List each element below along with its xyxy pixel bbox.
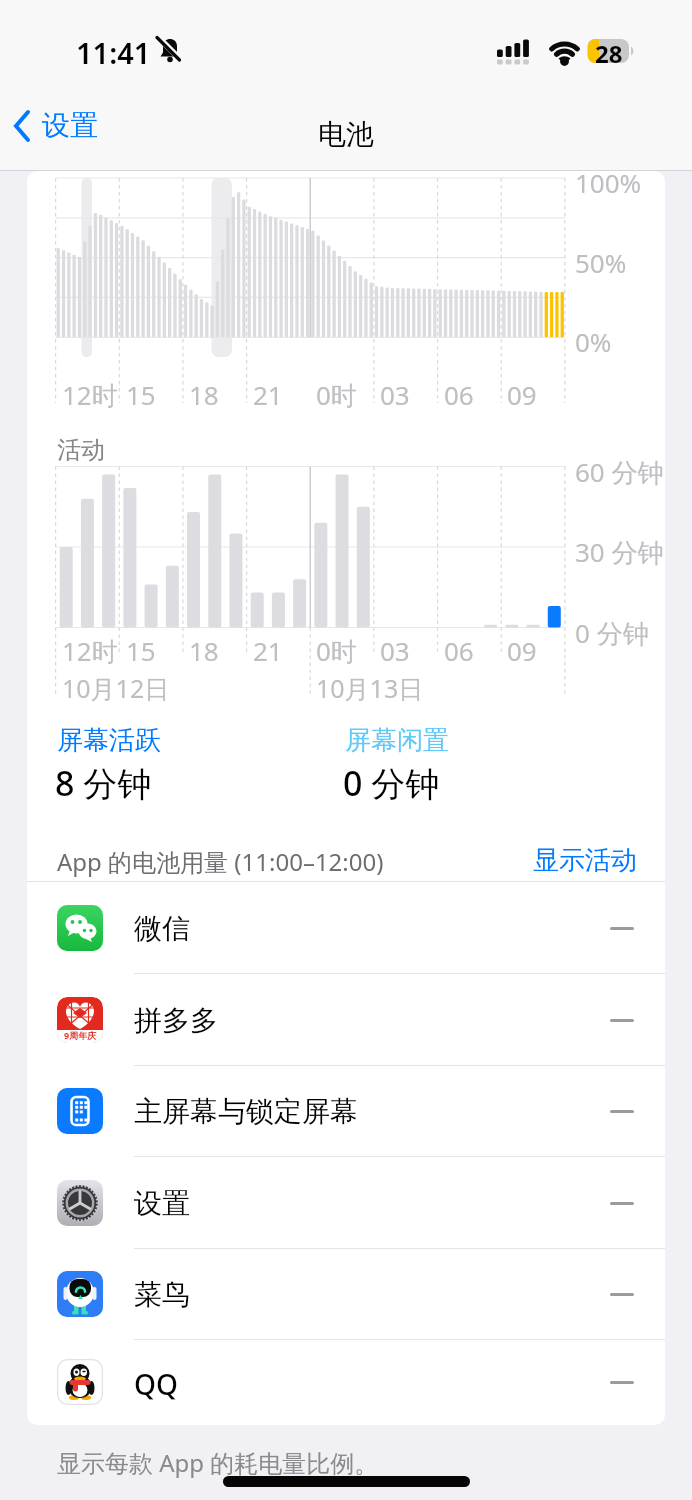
button[interactable]: 设置 xyxy=(10,108,140,160)
staticText: 屏幕活跃 xyxy=(57,724,161,757)
staticText: 11:41 xyxy=(76,33,151,72)
staticText: 15 xyxy=(126,377,156,412)
staticText: 09 xyxy=(507,633,537,668)
staticText: 28 xyxy=(595,37,623,70)
staticText: QQ xyxy=(134,1365,178,1403)
staticText: 18 xyxy=(189,377,219,412)
staticText: 主屏幕与锁定屏幕 xyxy=(134,1094,358,1129)
staticText: 06 xyxy=(444,633,474,668)
staticText: 09 xyxy=(507,377,537,412)
staticText: 10月13日 xyxy=(316,671,424,705)
staticText: 12时 xyxy=(62,377,118,413)
staticText: 拼多多 xyxy=(134,1003,218,1038)
staticText: 0 分钟 xyxy=(575,615,649,651)
button[interactable]: 显示活动 xyxy=(525,840,645,876)
staticText: 60 分钟 xyxy=(575,454,664,490)
staticText: 显示每款 App 的耗电量比例。 xyxy=(57,1446,379,1479)
staticText: 03 xyxy=(380,633,410,668)
staticText: 30 分钟 xyxy=(575,534,664,570)
staticText: 显示活动 xyxy=(533,844,637,877)
button[interactable]: 微信 xyxy=(27,882,665,974)
staticText: 0 分钟 xyxy=(343,760,440,806)
button[interactable]: 设置 xyxy=(27,1157,665,1249)
staticText: 18 xyxy=(189,633,219,668)
staticText: 设置 xyxy=(42,108,98,143)
staticText: 微信 xyxy=(134,911,190,946)
staticText: 0时 xyxy=(316,377,357,413)
staticText: 0% xyxy=(575,324,612,359)
staticText: App 的电池用量 (11:00–12:00) xyxy=(57,845,384,878)
staticText: 屏幕闲置 xyxy=(345,724,449,757)
staticText: 15 xyxy=(126,633,156,668)
staticText: 12时 xyxy=(62,633,118,669)
staticText: 100% xyxy=(575,165,642,200)
staticText: 06 xyxy=(444,377,474,412)
staticText: 0时 xyxy=(316,633,357,669)
staticText: 03 xyxy=(380,377,410,412)
staticText: 设置 xyxy=(134,1186,190,1221)
button[interactable]: QQ xyxy=(27,1340,665,1425)
staticText: 50% xyxy=(575,245,627,280)
staticText: 9周年庆 xyxy=(64,1029,97,1041)
staticText: 21 xyxy=(253,633,283,668)
staticText: 电池 xyxy=(318,117,374,152)
button[interactable]: 9周年庆 xyxy=(27,974,665,1066)
button[interactable]: 主屏幕与锁定屏幕 xyxy=(27,1066,665,1157)
button[interactable]: 菜鸟 xyxy=(27,1249,665,1340)
staticText: 21 xyxy=(253,377,283,412)
staticText: 菜鸟 xyxy=(134,1277,190,1312)
staticText: 10月12日 xyxy=(62,671,170,705)
staticText: 活动 xyxy=(57,435,105,465)
staticText: 8 分钟 xyxy=(55,760,152,806)
